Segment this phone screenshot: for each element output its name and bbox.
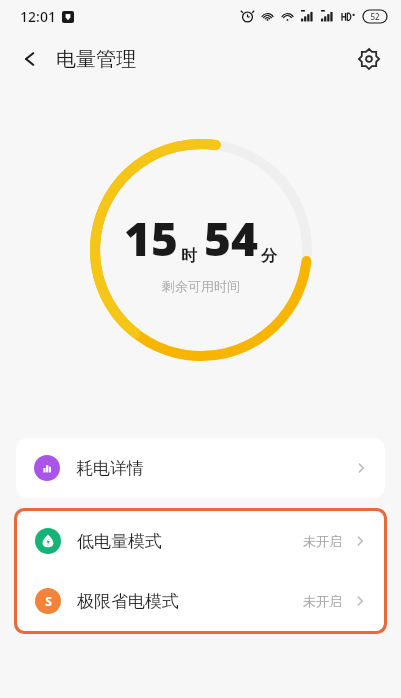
staticText: 极限省电模式 [77, 591, 179, 612]
staticText: 15 [124, 207, 178, 270]
button[interactable]: 耗电详情 [16, 438, 385, 498]
staticText: 低电量模式 [77, 531, 162, 552]
button[interactable]: Settings [347, 37, 391, 81]
staticText: 12:01 [20, 7, 56, 26]
staticText: 分 [261, 246, 277, 266]
button[interactable]: Back [8, 37, 52, 81]
staticText: S [45, 593, 52, 609]
staticText: 时 [181, 246, 197, 266]
staticText: 未开启 [303, 533, 342, 549]
staticText: 54 [204, 207, 258, 270]
button[interactable]: S [17, 571, 384, 631]
staticText: 耗电详情 [76, 458, 144, 479]
button[interactable]: 低电量模式 [17, 511, 384, 571]
staticText: 未开启 [303, 593, 342, 609]
staticText: 剩余可用时间 [162, 278, 240, 294]
staticText: 电量管理 [56, 47, 136, 72]
staticText: 52 [370, 11, 380, 22]
